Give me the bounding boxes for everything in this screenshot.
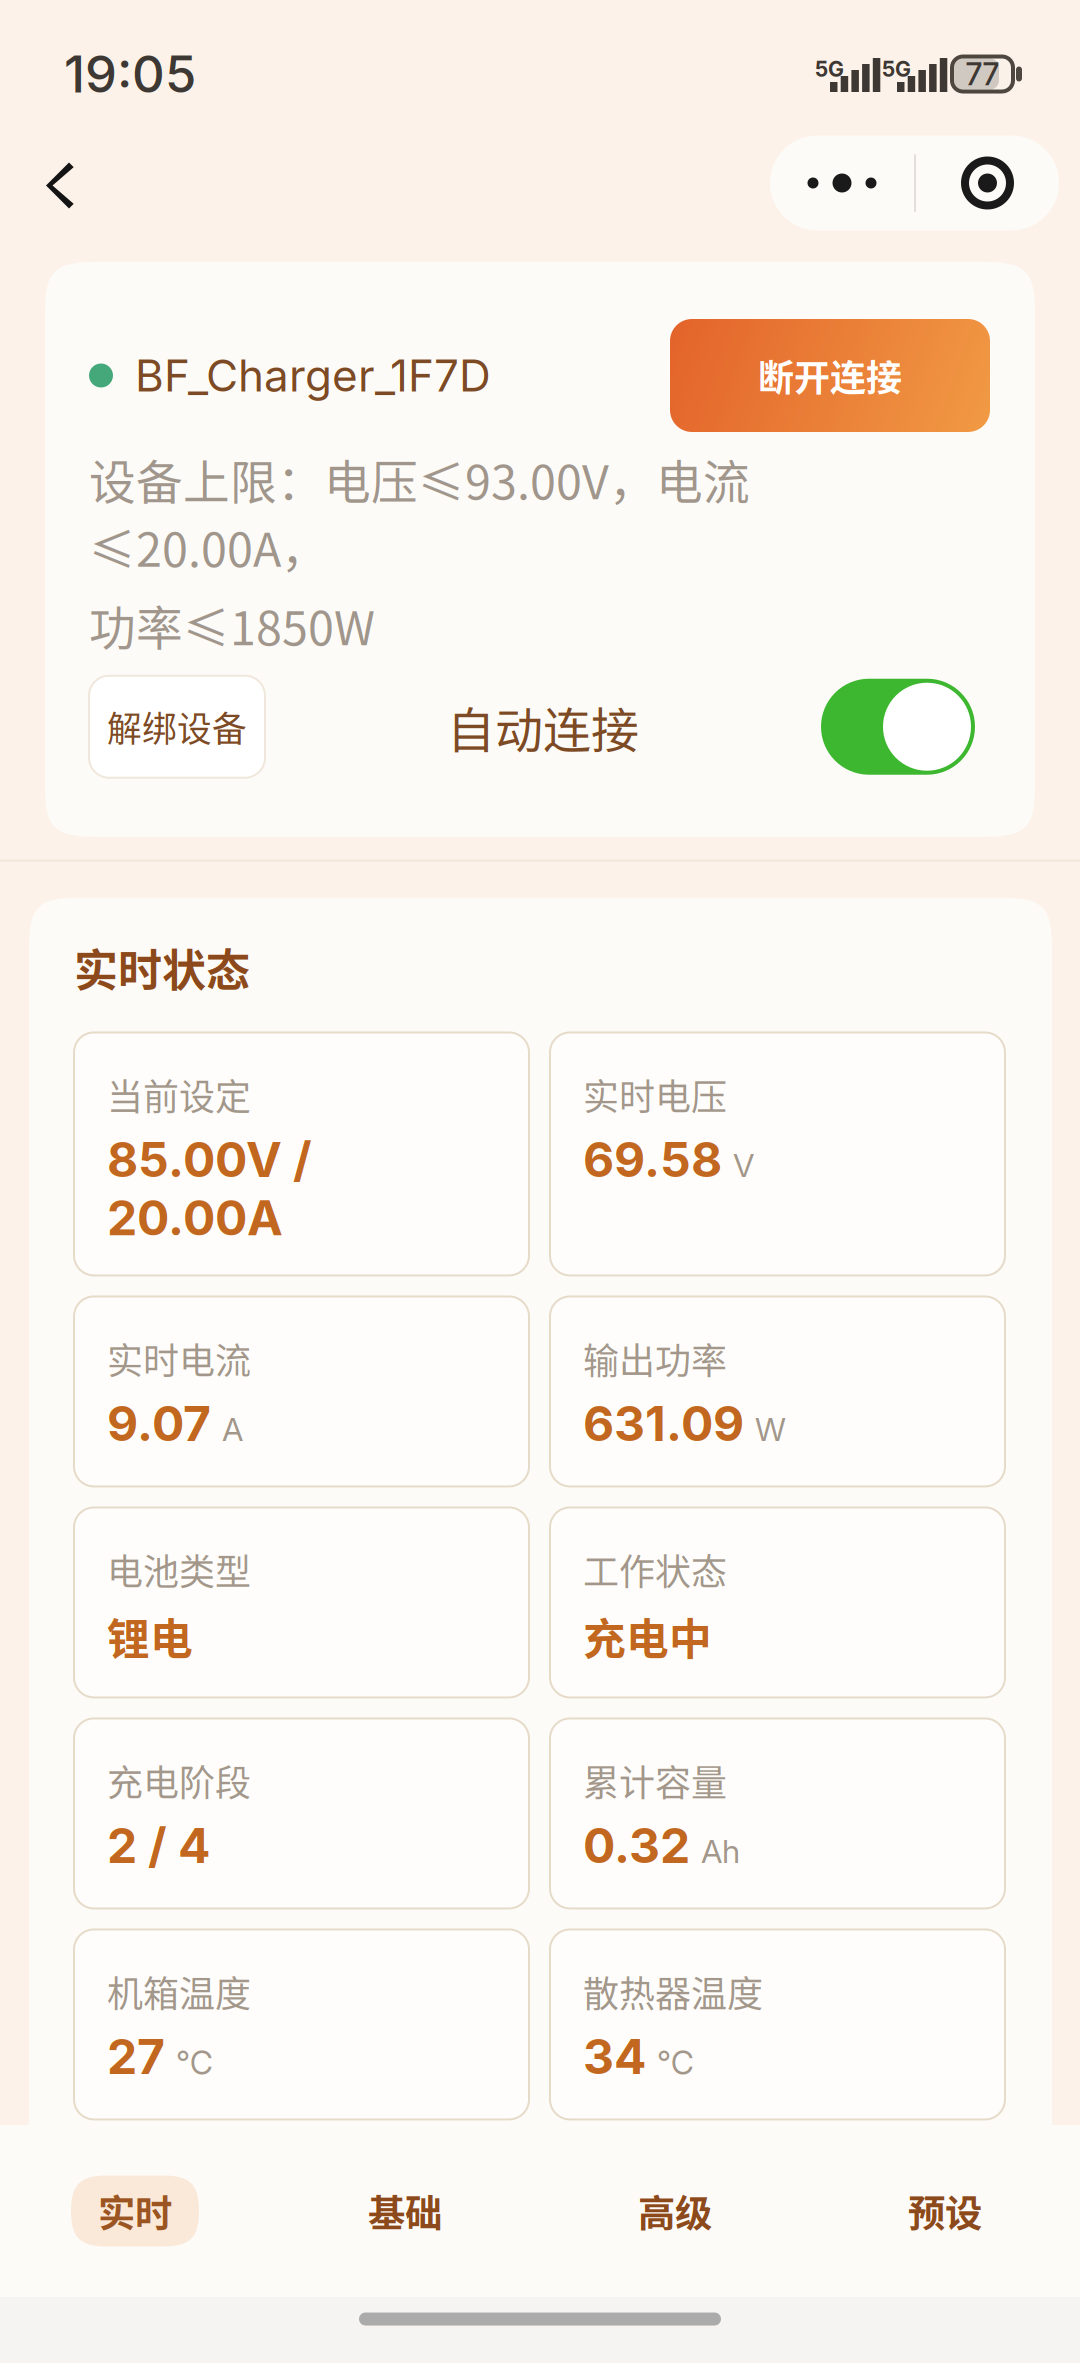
staticText: Ah	[701, 1832, 740, 1871]
button[interactable]: 返回	[0, 132, 118, 254]
staticText: 实时电流	[107, 1332, 251, 1384]
button[interactable]: 预设	[810, 2125, 1080, 2297]
staticText: 锂电	[107, 1606, 193, 1667]
staticText: 631.09	[583, 1395, 744, 1453]
staticText: 0.00	[107, 2239, 217, 2297]
staticText: 20.00A	[107, 1189, 283, 1247]
button[interactable]: 更多	[770, 135, 914, 230]
staticText: 69.58	[583, 1131, 722, 1189]
staticText: 母线电压	[107, 2176, 251, 2228]
staticText: 散热器温度	[583, 1965, 763, 2017]
staticText: 解绑设备	[107, 702, 247, 752]
staticText: 预设	[908, 2184, 982, 2238]
staticText: 实时电压	[583, 1068, 727, 1120]
staticText: 断开连接	[758, 349, 902, 401]
staticText: ℃	[176, 2043, 213, 2082]
staticText: 工作状态	[583, 1543, 727, 1595]
button[interactable]: 高级	[540, 2125, 810, 2297]
staticText: 充电阶段	[107, 1754, 251, 1806]
button[interactable]: 自动连接	[821, 679, 975, 775]
staticText: 5G	[815, 56, 844, 82]
staticText: 基础	[368, 2184, 442, 2238]
staticText: 实时状态	[74, 936, 250, 999]
staticText: 充电中	[583, 1606, 712, 1667]
staticText: 实时	[98, 2184, 172, 2238]
staticText: 27	[107, 2028, 165, 2086]
staticText: 0.32	[583, 1817, 690, 1875]
staticText: 功率≤1850W	[89, 591, 375, 659]
staticText: ℃	[657, 2043, 694, 2082]
staticText: 累计容量	[583, 1754, 727, 1806]
button[interactable]: 关闭	[916, 135, 1059, 230]
staticText: W	[755, 1410, 786, 1449]
staticText: 34	[583, 2028, 646, 2086]
staticText: 当前设定	[107, 1068, 251, 1120]
staticText: 9.07	[107, 1395, 211, 1453]
button[interactable]: 实时	[0, 2125, 270, 2297]
staticText: 85.00V /	[107, 1131, 312, 1189]
staticText: 机箱温度	[107, 1965, 251, 2017]
staticText: V	[733, 1146, 754, 1185]
button[interactable]: 断开连接	[655, 319, 975, 432]
staticText: BF_Charger_1F7D	[135, 349, 491, 402]
staticText: 5G	[882, 56, 911, 82]
staticText: 高级	[638, 2184, 712, 2238]
button[interactable]: 基础	[270, 2125, 540, 2297]
staticText: 77	[965, 55, 999, 92]
staticText: 自动连接	[447, 692, 639, 761]
staticText: 电池类型	[107, 1543, 251, 1595]
staticText: 19:05	[64, 43, 196, 105]
staticText: A	[222, 1410, 243, 1449]
staticText: 设备锁定	[583, 2176, 727, 2228]
staticText: 设备上限：电压≤93.00V，电流≤20.00A，	[89, 445, 750, 580]
button[interactable]: 解绑设备	[89, 676, 265, 778]
staticText: 输出功率	[583, 1332, 727, 1384]
staticText: 2 / 4	[107, 1817, 210, 1875]
